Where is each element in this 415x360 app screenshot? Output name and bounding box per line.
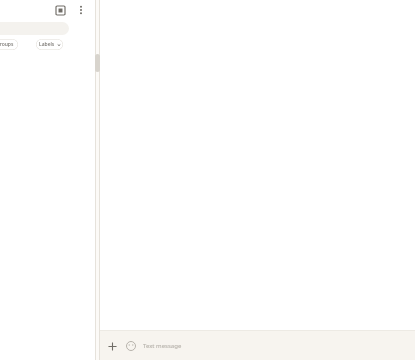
button[interactable]: Text message: [143, 331, 409, 360]
button[interactable]: Archived: [52, 2, 68, 18]
staticText: Labels: [39, 41, 55, 48]
staticText: Groups: [0, 41, 14, 48]
button[interactable]: Emoji: [123, 338, 139, 354]
button[interactable]: Labels: [36, 39, 63, 50]
button[interactable]: Groups: [0, 39, 18, 50]
button[interactable]: Add attachment: [104, 338, 120, 354]
staticText: Text message: [143, 342, 182, 350]
button[interactable]: More options: [73, 2, 89, 18]
button[interactable]: Resize panes: [95, 54, 100, 72]
